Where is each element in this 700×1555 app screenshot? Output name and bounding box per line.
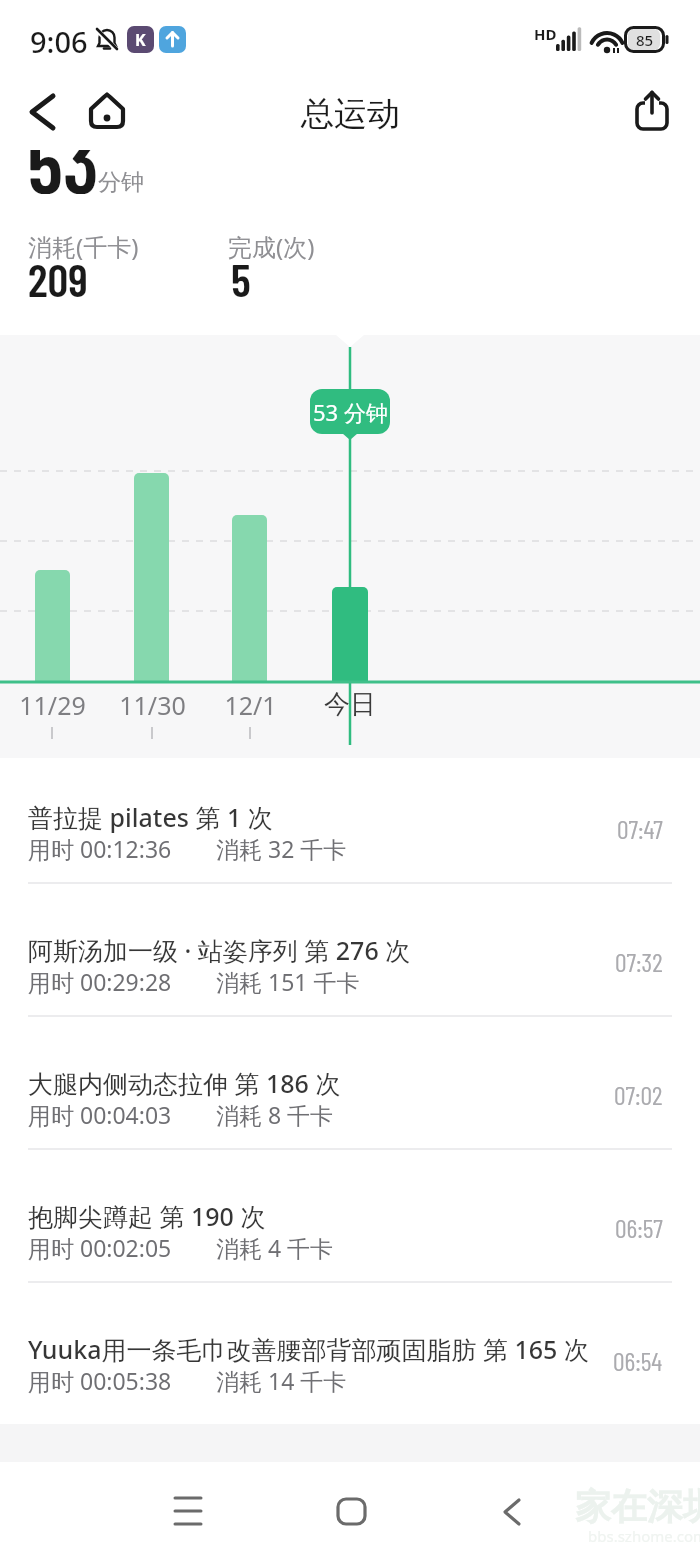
staticText: 用时 00:05:38 <box>28 1365 172 1396</box>
button[interactable]: Yuuka用一条毛巾改善腰部背部顽固脂肪 第 165 次 <box>0 1292 700 1425</box>
staticText: 07:47 <box>617 813 663 844</box>
staticText: 消耗 8 千卡 <box>216 1099 334 1130</box>
button[interactable]: 大腿内侧动态拉伸 第 186 次 <box>0 1026 700 1159</box>
staticText: HD <box>534 24 557 44</box>
staticText: 53 <box>27 150 147 194</box>
button[interactable] <box>84 88 130 134</box>
button[interactable] <box>477 1482 537 1542</box>
staticText: Yuuka用一条毛巾改善腰部背部顽固脂肪 第 165 次 <box>28 1332 589 1366</box>
staticText: 完成(次) <box>228 230 315 263</box>
staticText: 普拉提 pilates 第 1 次 <box>28 800 273 834</box>
staticText: bbs.szhome.com <box>588 1526 700 1546</box>
staticText: 07:02 <box>614 1079 663 1110</box>
staticText: 06:57 <box>615 1212 663 1243</box>
button[interactable]: 阿斯汤加一级 · 站姿序列 第 276 次 <box>0 893 700 1026</box>
staticText: 大腿内侧动态拉伸 第 186 次 <box>28 1066 341 1100</box>
button[interactable] <box>626 86 678 138</box>
staticText: 11/30 <box>119 688 186 722</box>
staticText: 抱脚尖蹲起 第 190 次 <box>28 1199 266 1233</box>
staticText: 53 分钟 <box>313 397 388 427</box>
staticText: 消耗 32 千卡 <box>216 833 347 864</box>
staticText: 消耗 4 千卡 <box>216 1232 334 1263</box>
button[interactable] <box>317 1482 377 1542</box>
staticText: 209 <box>28 251 88 306</box>
staticText: 用时 00:02:05 <box>28 1232 172 1263</box>
staticText: 85 <box>636 30 654 50</box>
staticText: 用时 00:04:03 <box>28 1099 172 1130</box>
staticText: 分钟 <box>98 168 144 197</box>
staticText: K <box>135 29 146 51</box>
staticText: 今日 <box>324 688 376 721</box>
staticText: 用时 00:12:36 <box>28 833 172 864</box>
button[interactable]: 抱脚尖蹲起 第 190 次 <box>0 1159 700 1292</box>
staticText: 9:06 <box>30 22 88 61</box>
staticText: 家在深圳 <box>575 1484 700 1529</box>
staticText: 11/29 <box>19 688 86 722</box>
staticText: 12/1 <box>224 688 277 722</box>
button[interactable]: 普拉提 pilates 第 1 次 <box>0 760 700 893</box>
staticText: 消耗 151 千卡 <box>216 966 360 997</box>
staticText: 阿斯汤加一级 · 站姿序列 第 276 次 <box>28 933 411 967</box>
staticText: 07:32 <box>615 946 663 977</box>
staticText: 总运动 <box>301 93 400 135</box>
staticText: 消耗 14 千卡 <box>216 1365 347 1396</box>
staticText: 用时 00:29:28 <box>28 966 172 997</box>
button[interactable] <box>18 86 70 138</box>
button[interactable] <box>158 1482 218 1542</box>
staticText: 消耗(千卡) <box>28 230 139 263</box>
staticText: 06:54 <box>613 1345 663 1376</box>
staticText: 5 <box>231 251 251 306</box>
